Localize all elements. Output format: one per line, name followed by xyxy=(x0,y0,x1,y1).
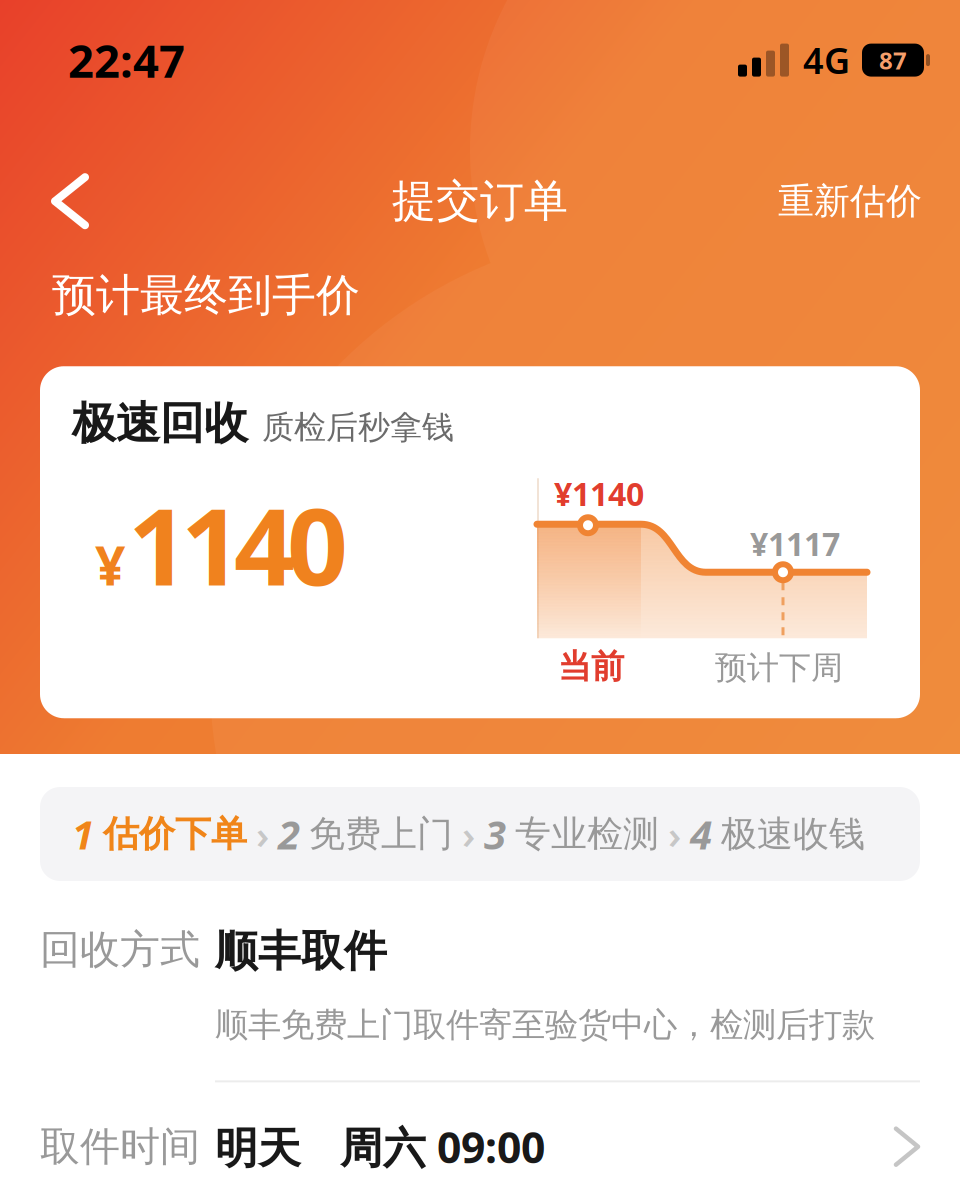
staticText: 当前 xyxy=(558,646,624,687)
staticText: 重新估价 xyxy=(778,179,922,223)
staticText: 提交订单 xyxy=(392,174,568,228)
staticText: › xyxy=(462,808,475,860)
staticText: 质检后秒拿钱 xyxy=(262,408,454,447)
staticText: 免费上门 xyxy=(309,812,453,856)
staticText: ¥1140 xyxy=(554,472,644,515)
staticText: 1140 xyxy=(128,473,348,615)
staticText: 专业检测 xyxy=(515,812,659,856)
button[interactable]: 取件时间 xyxy=(0,1082,960,1175)
staticText: 87 xyxy=(879,44,907,76)
staticText: 估价下单 xyxy=(103,812,247,856)
button[interactable]: Back xyxy=(0,177,105,225)
staticText: 22:47 xyxy=(68,30,185,90)
staticText: 预计最终到手价 xyxy=(52,268,360,322)
staticText: 回收方式 xyxy=(40,925,200,974)
staticText: 4 xyxy=(690,807,712,860)
staticText: 2 xyxy=(278,807,300,860)
staticText: 取件时间 xyxy=(40,1122,200,1171)
staticText: 顺丰取件 xyxy=(215,925,387,977)
staticText: 预计下周 xyxy=(715,648,843,687)
staticText: 极速回收 xyxy=(72,396,248,450)
staticText: 明天 周六 09:00 xyxy=(215,1118,545,1175)
staticText: 3 xyxy=(484,807,506,860)
staticText: 1 xyxy=(72,807,94,860)
staticText: 极速收钱 xyxy=(721,812,865,856)
staticText: › xyxy=(668,808,681,860)
button[interactable]: 回收方式 xyxy=(0,881,960,1045)
button[interactable]: 重新估价 xyxy=(778,179,960,223)
staticText: › xyxy=(256,808,269,860)
staticText: 顺丰免费上门取件寄至验货中心，检测后打款 xyxy=(215,1004,875,1045)
staticText: 4G xyxy=(803,36,850,84)
staticText: ¥1117 xyxy=(750,522,840,565)
staticText: ¥ xyxy=(95,529,126,600)
